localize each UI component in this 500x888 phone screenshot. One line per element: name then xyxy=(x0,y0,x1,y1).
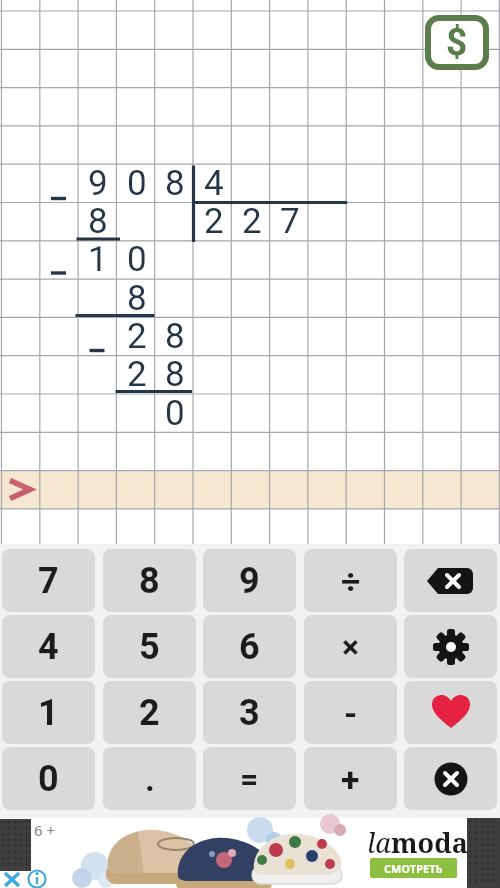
staticText: + xyxy=(341,759,360,799)
staticText: - xyxy=(344,693,358,733)
button[interactable]: 9 xyxy=(203,549,296,612)
button[interactable] xyxy=(404,549,497,612)
staticText: $ xyxy=(446,21,468,64)
staticText: 9 xyxy=(88,163,108,201)
staticText: moda xyxy=(391,824,468,861)
button[interactable]: - xyxy=(304,681,397,744)
staticText: . xyxy=(145,759,155,799)
button[interactable]: 1 xyxy=(2,681,95,744)
staticText: 0 xyxy=(127,239,147,277)
button[interactable]: 4 xyxy=(2,615,95,678)
button[interactable]: × xyxy=(304,615,397,678)
staticText: 8 xyxy=(88,201,108,239)
staticText: 0 xyxy=(127,163,147,201)
staticText: 6 xyxy=(239,626,260,668)
staticText: 2 xyxy=(204,201,224,239)
button[interactable]: СМОТРЕТЬ xyxy=(370,858,457,878)
button[interactable]: 8 xyxy=(103,549,196,612)
staticText: 0 xyxy=(38,758,59,800)
staticText: 8 xyxy=(165,163,185,201)
staticText: la xyxy=(367,824,391,861)
staticText: 9 xyxy=(239,560,260,602)
staticText: 7 xyxy=(38,560,59,602)
staticText: 1 xyxy=(88,239,108,277)
staticText: 6 + xyxy=(34,820,56,840)
button[interactable]: 6 + xyxy=(0,818,500,888)
staticText: 7 xyxy=(280,201,300,239)
staticText: 0 xyxy=(165,393,185,431)
button[interactable]: 7 xyxy=(2,549,95,612)
staticText: 3 xyxy=(239,692,260,734)
staticText: 1 xyxy=(38,692,59,734)
staticText: 5 xyxy=(139,626,160,668)
button[interactable] xyxy=(404,747,497,810)
staticText: 8 xyxy=(127,278,147,316)
staticText: СМОТРЕТЬ xyxy=(384,861,443,876)
button[interactable]: 3 xyxy=(203,681,296,744)
button[interactable]: 2 xyxy=(103,681,196,744)
button[interactable]: ÷ xyxy=(304,549,397,612)
button[interactable] xyxy=(404,681,497,744)
button[interactable]: + xyxy=(304,747,397,810)
staticText: 4 xyxy=(204,163,224,201)
button[interactable]: . xyxy=(103,747,196,810)
button[interactable]: = xyxy=(203,747,296,810)
staticText: 2 xyxy=(139,692,160,734)
staticText: = xyxy=(240,760,259,798)
staticText: 8 xyxy=(165,316,185,354)
staticText: 2 xyxy=(127,316,147,354)
button[interactable] xyxy=(404,615,497,678)
button[interactable]: 5 xyxy=(103,615,196,678)
staticText: 8 xyxy=(165,354,185,392)
staticText: 4 xyxy=(38,626,59,668)
staticText: × xyxy=(342,628,359,666)
button[interactable]: 6 xyxy=(203,615,296,678)
button[interactable]: $ xyxy=(425,15,489,70)
button[interactable]: 0 xyxy=(2,747,95,810)
staticText: ÷ xyxy=(341,561,361,601)
staticText: 2 xyxy=(242,201,262,239)
staticText: 2 xyxy=(127,354,147,392)
staticText: 8 xyxy=(139,560,160,602)
